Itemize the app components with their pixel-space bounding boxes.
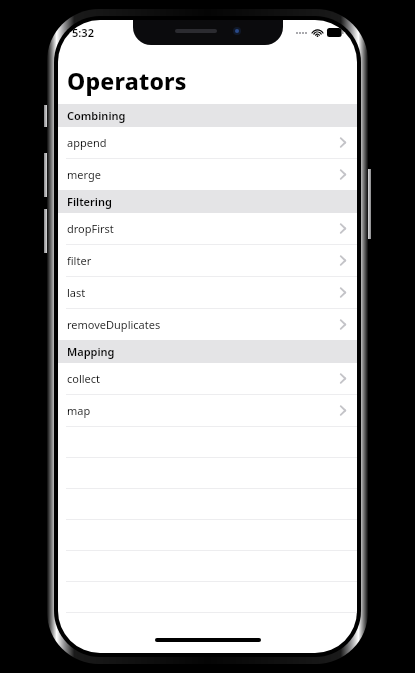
staticText: collect xyxy=(67,371,101,386)
staticText: Filtering xyxy=(67,194,112,209)
button[interactable]: dropFirst xyxy=(58,213,357,244)
staticText: dropFirst xyxy=(67,221,114,236)
button[interactable]: map xyxy=(58,395,357,426)
staticText: Combining xyxy=(67,108,126,123)
staticText: Operators xyxy=(67,65,187,96)
other: Home indicator xyxy=(155,638,261,642)
button[interactable]: last xyxy=(58,277,357,308)
staticText: 5:32 xyxy=(72,25,94,40)
button[interactable]: filter xyxy=(58,245,357,276)
staticText: removeDuplicates xyxy=(67,317,161,332)
staticText: map xyxy=(67,403,91,418)
staticText: append xyxy=(67,135,107,150)
button[interactable]: merge xyxy=(58,159,357,190)
button[interactable]: removeDuplicates xyxy=(58,309,357,340)
button[interactable]: collect xyxy=(58,363,357,394)
staticText: last xyxy=(67,285,86,300)
staticText: Mapping xyxy=(67,344,115,359)
staticText: merge xyxy=(67,167,101,182)
button[interactable]: append xyxy=(58,127,357,158)
staticText: filter xyxy=(67,253,92,268)
